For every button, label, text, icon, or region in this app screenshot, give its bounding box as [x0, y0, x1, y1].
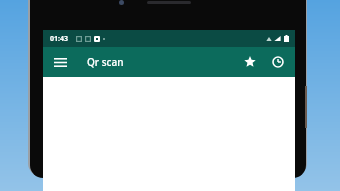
staticText: Qr scan [87, 55, 124, 69]
button[interactable]: History [267, 51, 289, 73]
button[interactable]: Menu [49, 51, 71, 73]
staticText: 01:43 [50, 34, 68, 44]
button[interactable]: Favorites [239, 51, 261, 73]
